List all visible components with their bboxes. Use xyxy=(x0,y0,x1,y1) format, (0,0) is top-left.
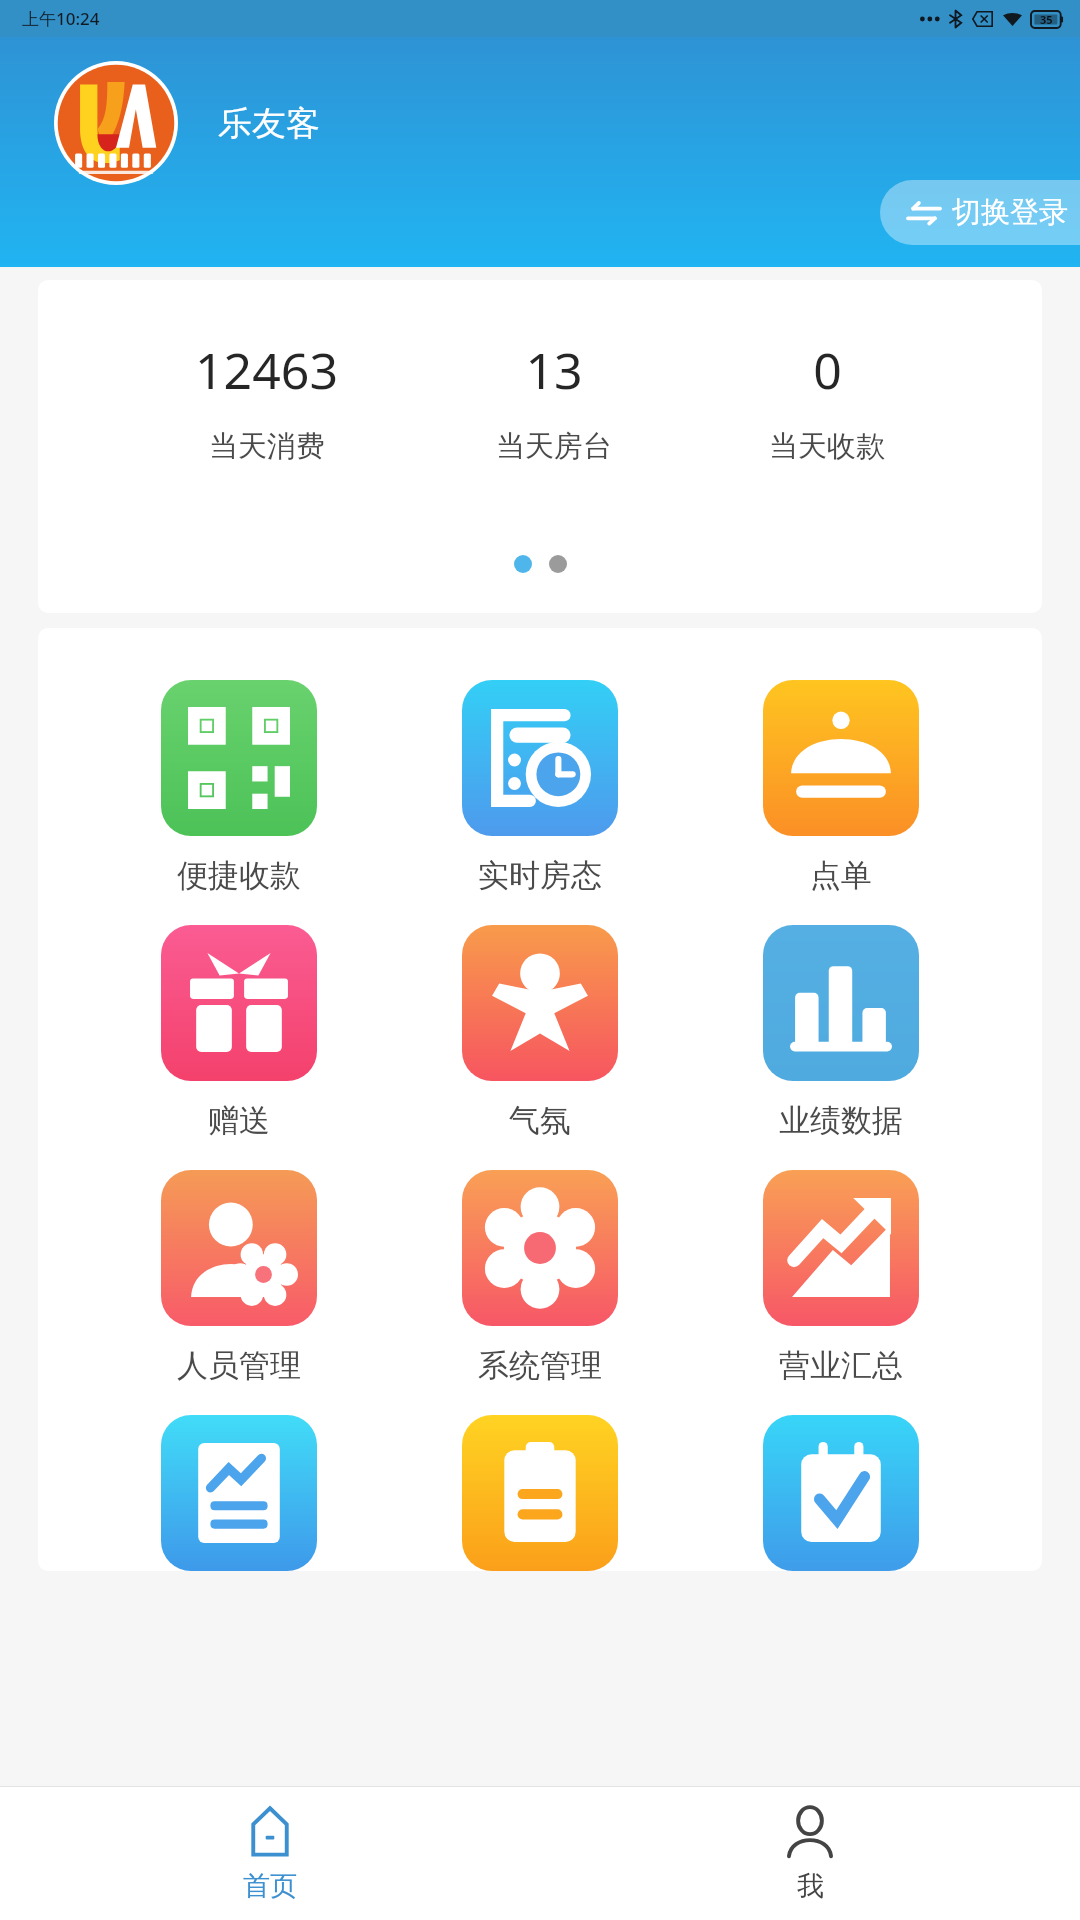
staticText: 我 xyxy=(797,1869,824,1903)
staticText: 营业汇总 xyxy=(779,1346,903,1385)
staticText: 实时房态 xyxy=(478,856,602,895)
staticText: 乐友客 xyxy=(218,102,320,145)
button[interactable]: 营业汇总 xyxy=(741,1170,941,1385)
staticText: 切换登录 xyxy=(952,194,1068,231)
button[interactable]: 实时房态 xyxy=(440,680,640,895)
staticText: 便捷收款 xyxy=(177,856,301,895)
button[interactable]: 人员管理 xyxy=(139,1170,339,1385)
staticText: 12463 xyxy=(195,336,338,404)
staticText: 当天房台 xyxy=(496,428,612,465)
button[interactable]: 切换登录 xyxy=(880,180,1080,245)
button[interactable]: 系统管理 xyxy=(440,1170,640,1385)
staticText: 当天消费 xyxy=(209,428,325,465)
staticText: 首页 xyxy=(243,1869,297,1903)
staticText: 赠送 xyxy=(208,1101,270,1140)
button[interactable]: 气氛 xyxy=(440,925,640,1140)
button[interactable]: 我 xyxy=(540,1787,1080,1920)
staticText: 系统管理 xyxy=(478,1346,602,1385)
staticText: 0 xyxy=(813,336,842,404)
staticText: 气氛 xyxy=(509,1101,571,1140)
staticText: 当天收款 xyxy=(769,428,885,465)
staticText: 人员管理 xyxy=(177,1346,301,1385)
staticText: 上午10:24 xyxy=(22,7,100,30)
staticText: 13 xyxy=(525,336,583,404)
button[interactable]: Menu item xyxy=(741,1415,941,1571)
button[interactable]: 首页 xyxy=(0,1787,540,1920)
button[interactable]: 便捷收款 xyxy=(139,680,339,895)
staticText: 业绩数据 xyxy=(779,1101,903,1140)
button[interactable]: 赠送 xyxy=(139,925,339,1140)
button[interactable]: Menu item xyxy=(139,1415,339,1571)
staticText: 点单 xyxy=(810,856,872,895)
button[interactable]: 点单 xyxy=(741,680,941,895)
staticText: 35 xyxy=(1040,12,1053,27)
button[interactable]: Menu item xyxy=(440,1415,640,1571)
button[interactable]: 业绩数据 xyxy=(741,925,941,1140)
